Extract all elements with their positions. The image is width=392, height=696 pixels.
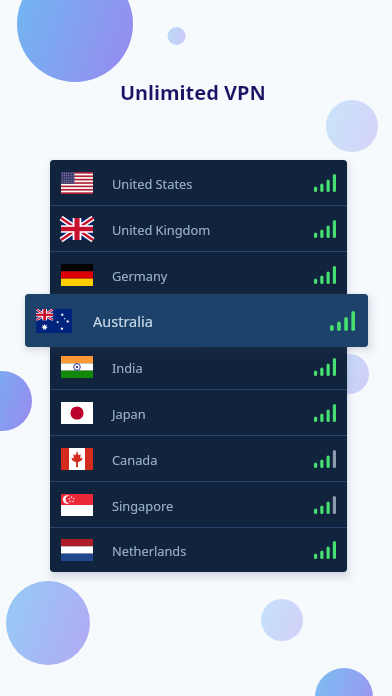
staticText: United Kingdom: [112, 221, 211, 238]
button[interactable]: Germany: [50, 252, 347, 298]
button[interactable]: Canada: [50, 436, 347, 482]
button[interactable]: India: [50, 344, 347, 390]
button[interactable]: Australia: [25, 294, 368, 347]
staticText: Japan: [112, 405, 146, 422]
button[interactable]: Australia: [50, 298, 347, 344]
other: Signal strength 4 of 4: [314, 174, 336, 192]
other: Signal strength 4 of 4: [314, 220, 336, 238]
button[interactable]: Japan: [50, 390, 347, 436]
button[interactable]: United States: [50, 160, 347, 206]
staticText: Unlimited VPN: [120, 79, 266, 106]
staticText: India: [112, 359, 143, 376]
staticText: United States: [112, 175, 193, 192]
staticText: Singapore: [112, 497, 174, 514]
staticText: Netherlands: [112, 542, 187, 559]
other: Signal strength 3 of 4: [314, 496, 336, 514]
button[interactable]: Singapore: [50, 482, 347, 528]
other: Signal strength 4 of 4: [314, 312, 336, 330]
other: Signal strength 4 of 4: [314, 358, 336, 376]
other: Signal strength 3 of 4: [314, 450, 336, 468]
button[interactable]: United Kingdom: [50, 206, 347, 252]
staticText: Germany: [112, 267, 168, 284]
other: Signal strength 4 of 4: [314, 266, 336, 284]
other: Signal strength 4 of 4: [330, 311, 355, 331]
staticText: Canada: [112, 451, 158, 468]
staticText: Australia: [93, 311, 153, 331]
button[interactable]: Netherlands: [50, 528, 347, 572]
other: Signal strength 4 of 4: [314, 541, 336, 559]
staticText: Australia: [112, 313, 165, 330]
other: Signal strength 4 of 4: [314, 404, 336, 422]
